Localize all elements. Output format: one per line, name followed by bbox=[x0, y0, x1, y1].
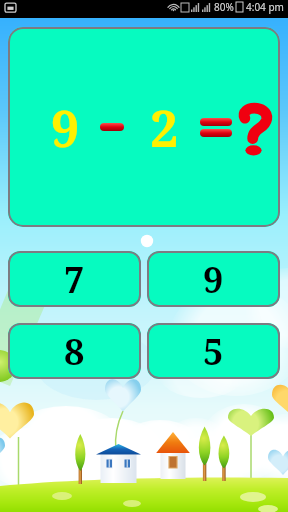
button[interactable]: 5 bbox=[147, 323, 280, 379]
button[interactable]: 8 bbox=[8, 323, 141, 379]
staticText: 9 bbox=[51, 94, 80, 162]
staticText: 80% bbox=[214, 0, 234, 14]
staticText: 4:04 pm bbox=[246, 0, 284, 14]
staticText: 5 bbox=[203, 327, 224, 376]
staticText: 7 bbox=[64, 255, 85, 304]
staticText: 2 bbox=[150, 94, 179, 162]
button[interactable]: 9 bbox=[147, 251, 280, 307]
staticText: 8 bbox=[64, 327, 85, 376]
button[interactable]: 7 bbox=[8, 251, 141, 307]
staticText: 9 bbox=[203, 255, 224, 304]
